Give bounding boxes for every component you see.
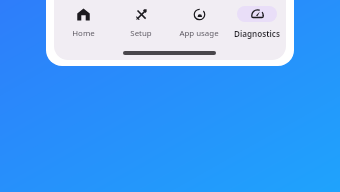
staticText: Setup	[130, 28, 152, 39]
other: Setup	[135, 8, 148, 21]
button[interactable]: Home	[54, 0, 112, 39]
staticText: App usage	[179, 28, 219, 39]
button[interactable]: App usage	[170, 0, 228, 39]
other: App usage	[193, 8, 206, 21]
button[interactable]: Setup	[112, 0, 170, 39]
button[interactable]: Diagnostics	[228, 0, 286, 39]
other: Home	[77, 8, 90, 21]
staticText: Home	[72, 28, 95, 39]
staticText: Diagnostics	[234, 28, 280, 39]
other: Diagnostics	[251, 8, 264, 21]
